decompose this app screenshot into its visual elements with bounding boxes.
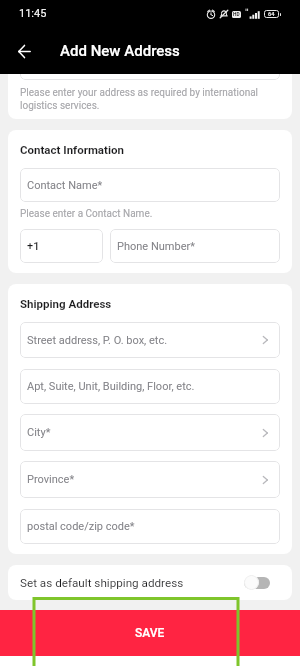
- staticText: Please enter your address as required by…: [20, 87, 272, 111]
- button[interactable]: City*: [20, 414, 280, 451]
- button[interactable]: postal code/zip code*: [20, 509, 280, 544]
- staticText: SAVE: [135, 626, 165, 640]
- button[interactable]: Set as default shipping address: [8, 565, 292, 600]
- staticText: +1: [27, 240, 95, 253]
- button[interactable]: Street address, P. O. box, etc.: [20, 322, 280, 358]
- staticText: Street address, P. O. box, etc.: [27, 334, 258, 347]
- button[interactable]: +1: [20, 229, 103, 263]
- button[interactable]: SAVE: [0, 610, 300, 656]
- button[interactable]: Contact Name*: [20, 168, 280, 202]
- staticText: Apt, Suite, Unit, Building, Floor, etc.: [27, 380, 272, 393]
- staticText: postal code/zip code*: [27, 520, 272, 533]
- staticText: HD: [233, 12, 240, 18]
- button[interactable]: Apt, Suite, Unit, Building, Floor, etc.: [20, 369, 280, 404]
- button[interactable]: Province*: [20, 461, 280, 498]
- staticText: Province*: [27, 473, 258, 486]
- button[interactable]: Back: [6, 33, 42, 69]
- staticText: City*: [27, 426, 258, 439]
- staticText: 11:45: [19, 7, 47, 20]
- staticText: Add New Address: [60, 42, 180, 60]
- button[interactable]: Phone Number*: [110, 229, 280, 263]
- staticText: Shipping Address: [20, 297, 112, 310]
- staticText: Contact Information: [20, 143, 124, 156]
- staticText: Contact Name*: [27, 179, 272, 192]
- staticText: Set as default shipping address: [20, 576, 244, 590]
- staticText: Please enter a Contact Name.: [20, 208, 153, 220]
- staticText: 64: [268, 11, 275, 18]
- staticText: Phone Number*: [117, 240, 272, 253]
